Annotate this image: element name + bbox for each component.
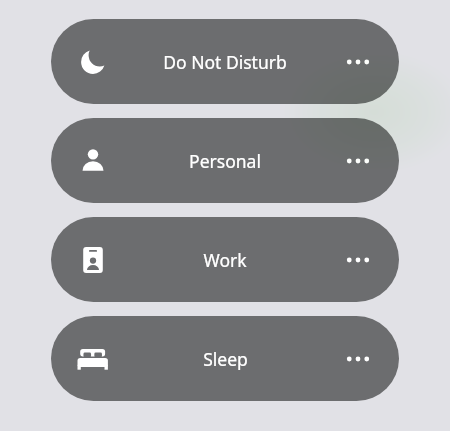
button[interactable]: Work xyxy=(51,217,399,302)
staticText: Do Not Disturb xyxy=(163,50,287,74)
button[interactable]: Personal xyxy=(51,118,399,203)
button[interactable]: Sleep xyxy=(51,316,399,401)
button[interactable]: More options for Personal xyxy=(341,144,375,178)
staticText: Work xyxy=(203,248,247,272)
button[interactable]: Do Not Disturb xyxy=(51,19,399,104)
staticText: Sleep xyxy=(203,347,248,371)
staticText: Personal xyxy=(189,149,261,173)
button[interactable]: More options for Sleep xyxy=(341,342,375,376)
button[interactable]: More options for Do Not Disturb xyxy=(341,45,375,79)
button[interactable]: More options for Work xyxy=(341,243,375,277)
